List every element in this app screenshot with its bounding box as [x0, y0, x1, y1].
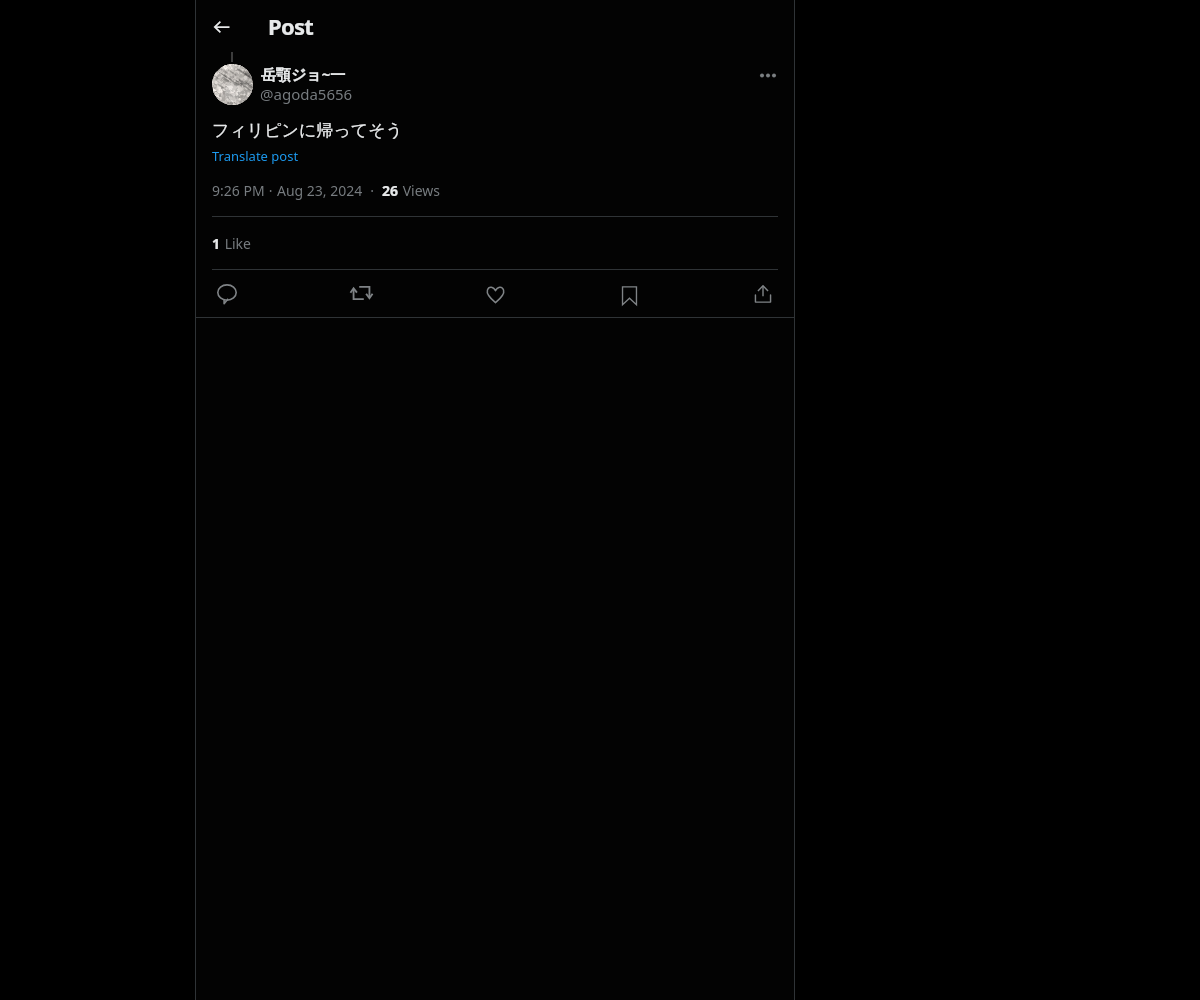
staticText: · [265, 181, 277, 200]
button[interactable]: Share [745, 276, 781, 312]
button[interactable]: Translate post [212, 147, 299, 165]
staticText: Like [221, 234, 251, 253]
staticText: フィリピンに帰ってそう [212, 120, 403, 141]
button[interactable]: 1 [195, 217, 795, 269]
staticText: 9:26 PM [212, 181, 265, 200]
button[interactable]: Profile photo [212, 64, 253, 105]
button[interactable]: Repost [343, 276, 379, 312]
staticText: 1 [212, 234, 221, 253]
button[interactable]: Back [202, 7, 242, 47]
staticText: Aug 23, 2024 [277, 181, 363, 200]
staticText: Post [268, 11, 314, 41]
staticText: 26 [382, 181, 399, 200]
staticText: · [363, 181, 382, 200]
button[interactable]: More options [751, 58, 785, 92]
staticText: Translate post [212, 147, 299, 165]
button[interactable]: Like [477, 276, 513, 312]
button[interactable]: 岳顎ジョ~一 [261, 64, 346, 84]
staticText: Views [399, 181, 440, 200]
button[interactable]: Reply [209, 276, 245, 312]
button[interactable]: @agoda5656 [260, 84, 353, 104]
button[interactable]: Bookmark [611, 276, 647, 312]
